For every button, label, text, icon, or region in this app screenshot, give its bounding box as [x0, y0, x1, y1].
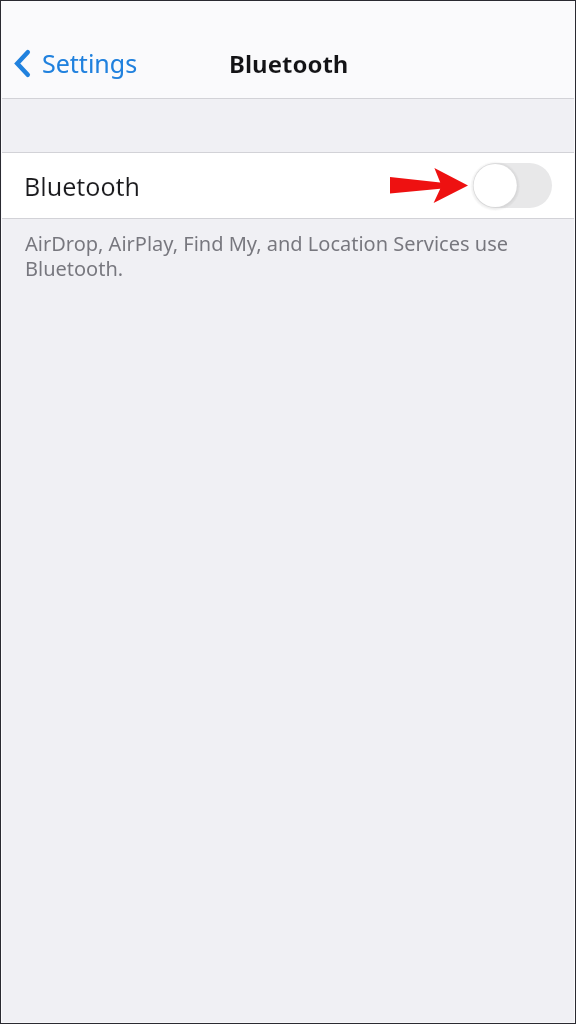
button[interactable]: Back to Settings [0, 40, 148, 86]
staticText: Bluetooth [229, 47, 349, 80]
staticText: Settings [42, 46, 138, 80]
staticText: AirDrop, AirPlay, Find My, and Location … [25, 230, 516, 282]
staticText: Bluetooth [24, 169, 141, 203]
button[interactable]: Bluetooth [0, 153, 576, 218]
button[interactable]: Bluetooth toggle [473, 163, 552, 209]
